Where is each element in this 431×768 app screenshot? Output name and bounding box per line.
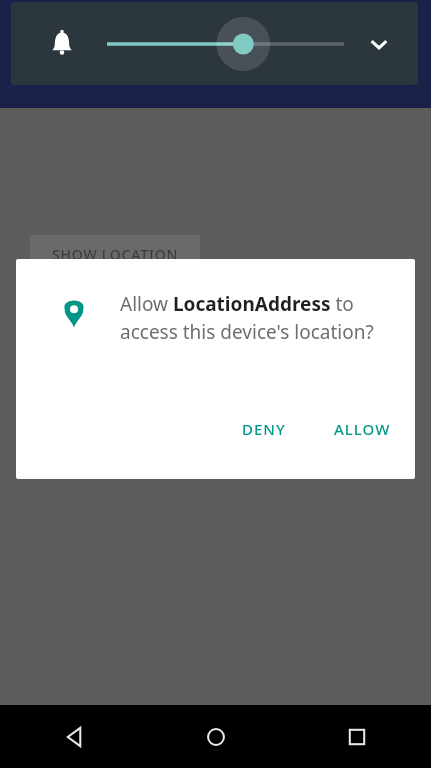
button[interactable]: Back [51,713,99,761]
staticText: Allow LocationAddress to access this dev… [120,291,382,345]
staticText: ALLOW [334,419,391,439]
button[interactable]: SHOW LOCATION [30,235,200,273]
staticText: DENY [242,419,286,439]
button[interactable]: ALLOW [324,409,401,449]
button[interactable]: Home [192,713,240,761]
button[interactable]: Expand volume controls [363,28,395,60]
button[interactable]: Recents [333,713,381,761]
button[interactable]: Volume slider [96,16,346,72]
staticText: SHOW LOCATION [52,245,179,264]
button[interactable]: DENY [232,409,296,449]
button[interactable]: Notification volume [47,28,77,58]
